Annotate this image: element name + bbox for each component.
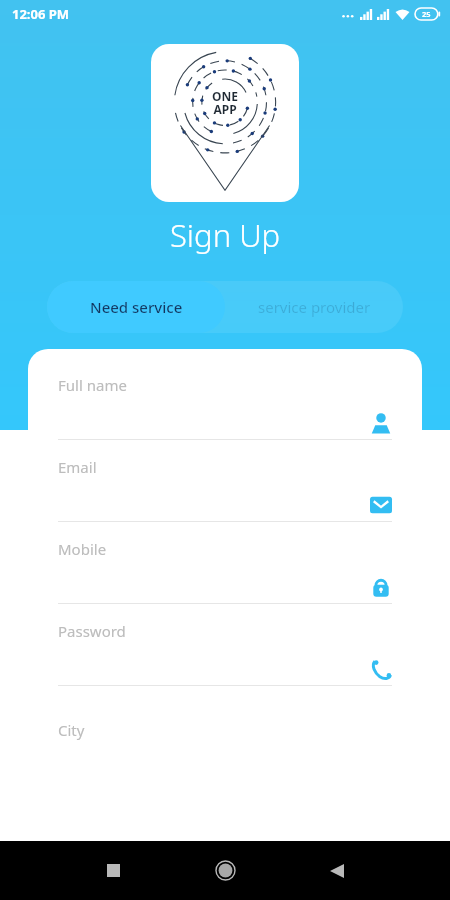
button[interactable]: Password [58, 621, 392, 703]
button[interactable]: Mobile [58, 539, 392, 621]
staticText: Email [58, 457, 97, 477]
staticText: Password [58, 621, 126, 641]
staticText: service provider [258, 297, 371, 317]
button[interactable]: Full name [58, 375, 392, 457]
button[interactable]: Need service [47, 281, 225, 333]
button[interactable]: Back [281, 841, 393, 900]
staticText: Full name [58, 375, 127, 395]
button[interactable]: Home [169, 841, 281, 900]
button[interactable]: service provider [225, 281, 403, 333]
staticText: Need service [90, 297, 183, 317]
button[interactable]: Recent apps [57, 841, 169, 900]
staticText: 25 [422, 9, 431, 19]
staticText: City [58, 720, 85, 740]
staticText: ONE APP [212, 88, 238, 118]
button[interactable]: Email [58, 457, 392, 539]
staticText: 12:06 PM [12, 5, 70, 23]
staticText: Mobile [58, 539, 107, 559]
staticText: Sign Up [0, 214, 450, 256]
